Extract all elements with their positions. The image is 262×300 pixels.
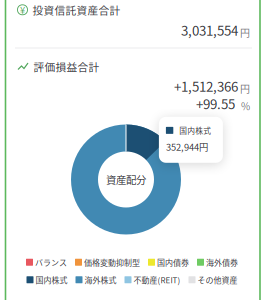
staticText: +1,512,366 <box>174 76 238 96</box>
staticText: 海外債券 <box>206 256 238 268</box>
staticText: ¥ <box>20 3 25 16</box>
staticText: 国内債券 <box>157 256 189 268</box>
staticText: 352,944円 <box>166 140 208 153</box>
staticText: 国内株式 <box>179 125 211 136</box>
staticText: 国内株式 <box>35 274 67 286</box>
staticText: 不動産(REIT) <box>133 274 180 286</box>
staticText: 円 <box>240 25 250 40</box>
staticText: 資産配分 <box>106 172 146 187</box>
staticText: % <box>241 99 250 113</box>
staticText: 3,031,554 <box>181 20 238 40</box>
staticText: 価格変動抑制型 <box>84 256 140 268</box>
staticText: 投資信託資産合計 <box>32 2 120 17</box>
staticText: 海外株式 <box>84 274 116 286</box>
staticText: バランス <box>35 256 67 268</box>
staticText: 評価損益合計 <box>33 59 99 74</box>
staticText: その他資産 <box>197 274 237 286</box>
staticText: 円 <box>240 81 250 96</box>
staticText: +99.55 <box>196 94 235 113</box>
